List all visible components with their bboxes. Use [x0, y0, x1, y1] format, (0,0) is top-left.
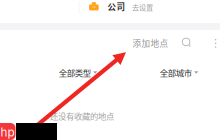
button[interactable]: 全部城市: [128, 59, 220, 85]
staticText: 去设置: [132, 2, 153, 12]
staticText: 还没有收藏的地点: [50, 110, 114, 122]
button[interactable]: 添加地点: [132, 36, 168, 50]
staticText: 添加地点: [132, 37, 168, 49]
staticText: 公司: [107, 0, 125, 13]
button[interactable]: 全部类型: [27, 59, 128, 85]
button[interactable]: 去设置: [130, 2, 154, 13]
staticText: 全部城市: [160, 66, 192, 79]
staticText: 全部类型: [59, 66, 91, 79]
button[interactable]: Search: [182, 38, 192, 48]
button[interactable]: 公司: [87, 0, 127, 13]
staticText: hp: [0, 125, 14, 139]
button[interactable]: More options: [213, 39, 219, 48]
